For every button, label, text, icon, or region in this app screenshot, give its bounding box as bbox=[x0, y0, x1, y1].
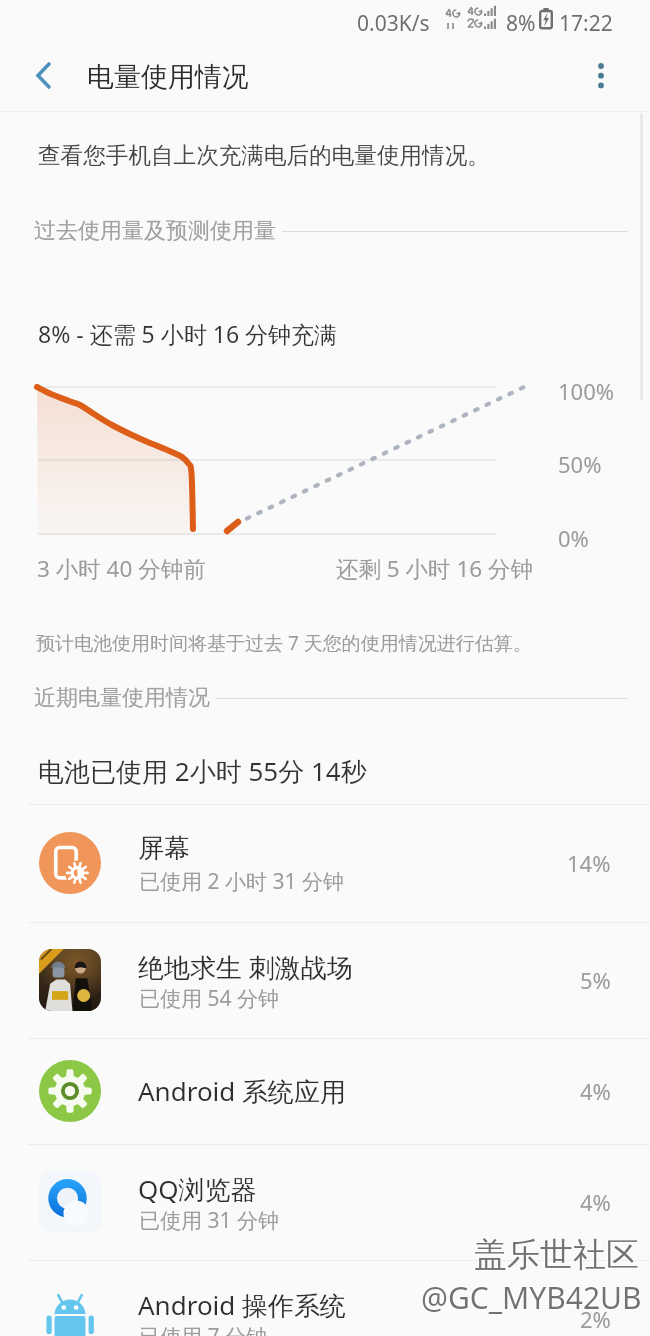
staticText: @GC_MYB42UB bbox=[421, 1278, 642, 1319]
staticText: 查看您手机自上次充满电后的电量使用情况。 bbox=[38, 141, 490, 169]
staticText: 8% bbox=[506, 9, 536, 38]
staticText: @GC_MYB42UB bbox=[421, 1277, 642, 1318]
staticText: 电量使用情况 bbox=[87, 60, 249, 94]
staticText: @GC_MYB42UB bbox=[422, 1278, 643, 1319]
staticText: 2% bbox=[580, 1304, 611, 1334]
staticText: @GC_MYB42UB bbox=[420, 1278, 641, 1319]
staticText: 4% bbox=[580, 1187, 611, 1217]
staticText: 4% bbox=[580, 1076, 611, 1106]
staticText: 屏幕 bbox=[138, 832, 190, 865]
staticText: @GC_MYB42UB bbox=[422, 1277, 643, 1318]
staticText: Android 系统应用 bbox=[138, 1073, 347, 1109]
staticText: 8% - 还需 5 小时 16 分钟充满 bbox=[38, 318, 338, 349]
staticText: 盖乐世社区 bbox=[473, 1233, 638, 1275]
button[interactable]: More options bbox=[580, 54, 622, 96]
button[interactable]: QQ浏览器 bbox=[0, 1144, 650, 1260]
staticText: 已使用 2 小时 31 分钟 bbox=[139, 867, 344, 896]
staticText: 已使用 31 分钟 bbox=[139, 1206, 279, 1235]
staticText: 盖乐世社区 bbox=[473, 1234, 638, 1276]
staticText: 盖乐世社区 bbox=[475, 1233, 640, 1275]
staticText: 电池已使用 2小时 55分 14秒 bbox=[38, 753, 367, 789]
button[interactable]: 绝地求生 刺激战场 bbox=[0, 922, 650, 1038]
staticText: 盖乐世社区 bbox=[474, 1234, 639, 1276]
button[interactable]: 屏幕 bbox=[0, 804, 650, 922]
staticText: 盖乐世社区 bbox=[473, 1235, 638, 1277]
staticText: 预计电池使用时间将基于过去 7 天您的使用情况进行估算。 bbox=[36, 630, 532, 656]
staticText: 0% bbox=[558, 523, 589, 553]
staticText: Android 操作系统 bbox=[138, 1287, 347, 1323]
staticText: 5% bbox=[580, 965, 611, 995]
button[interactable]: Android 系统应用 bbox=[0, 1038, 650, 1144]
staticText: 盖乐世社区 bbox=[474, 1233, 639, 1275]
button[interactable]: Back bbox=[22, 54, 66, 98]
staticText: @GC_MYB42UB bbox=[420, 1277, 641, 1318]
staticText: 14% bbox=[567, 848, 611, 878]
staticText: 盖乐世社区 bbox=[475, 1235, 640, 1277]
staticText: 已使用 7 分钟 bbox=[139, 1322, 267, 1336]
button[interactable]: Android 操作系统 bbox=[0, 1260, 650, 1336]
staticText: @GC_MYB42UB bbox=[422, 1276, 643, 1317]
staticText: 盖乐世社区 bbox=[474, 1235, 639, 1277]
staticText: @GC_MYB42UB bbox=[421, 1276, 642, 1317]
staticText: QQ浏览器 bbox=[138, 1171, 257, 1207]
staticText: 17:22 bbox=[559, 9, 613, 38]
staticText: 50% bbox=[558, 449, 602, 479]
staticText: 3 小时 40 分钟前 bbox=[37, 553, 206, 584]
staticText: 100% bbox=[558, 376, 615, 406]
staticText: 过去使用量及预测使用量 bbox=[34, 217, 276, 245]
staticText: @GC_MYB42UB bbox=[420, 1276, 641, 1317]
staticText: 绝地求生 刺激战场 bbox=[138, 949, 353, 985]
staticText: 已使用 54 分钟 bbox=[139, 984, 279, 1013]
staticText: 还剩 5 小时 16 分钟 bbox=[336, 553, 534, 584]
staticText: 盖乐世社区 bbox=[475, 1234, 640, 1276]
staticText: 近期电量使用情况 bbox=[34, 684, 210, 712]
staticText: 0.03K/s bbox=[357, 9, 430, 38]
